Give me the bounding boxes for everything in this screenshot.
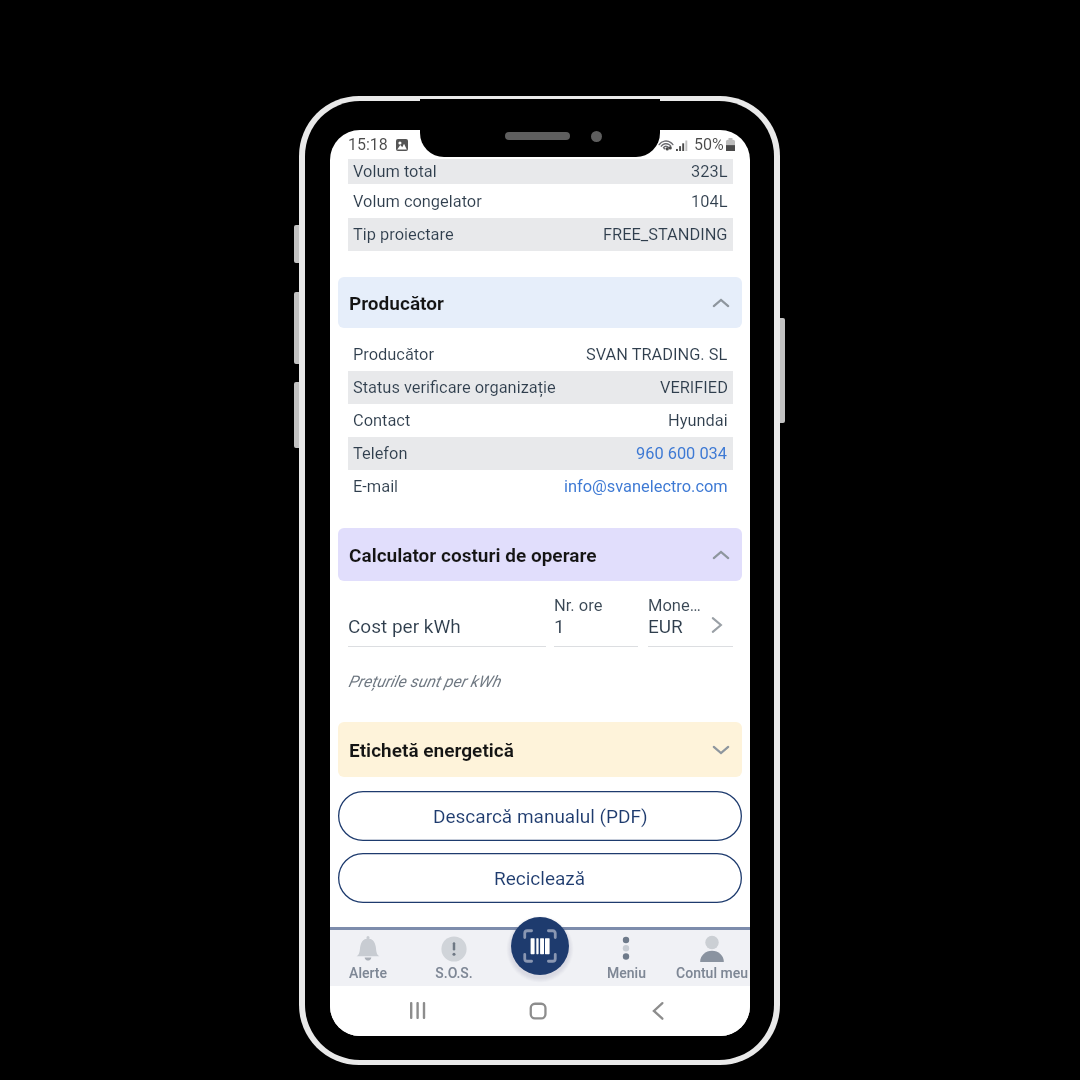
staticText: Contact bbox=[353, 411, 411, 430]
staticText: SVAN TRADING. SL bbox=[586, 345, 728, 364]
button[interactable]: Volum total bbox=[348, 159, 733, 184]
button[interactable]: Calculator costuri de operare bbox=[338, 528, 742, 581]
staticText: info@svanelectro.com bbox=[564, 477, 728, 496]
button[interactable]: Descarcă manualul (PDF) bbox=[338, 791, 742, 841]
staticText: 104L bbox=[691, 192, 728, 211]
staticText: E-mail bbox=[353, 477, 399, 496]
staticText: Nr. ore bbox=[554, 596, 603, 615]
button[interactable]: Producător bbox=[348, 338, 733, 371]
staticText: Mone… bbox=[648, 596, 701, 615]
other: Home bbox=[529, 1002, 547, 1020]
staticText: VERIFIED bbox=[660, 378, 728, 397]
staticText: Status verificare organizație bbox=[353, 378, 556, 397]
button[interactable]: Etichetă energetică bbox=[338, 722, 742, 777]
staticText: EUR bbox=[648, 615, 683, 637]
button[interactable]: Scan barcode bbox=[511, 917, 569, 975]
button[interactable]: Volum congelator bbox=[348, 184, 733, 218]
button[interactable]: Telefon bbox=[348, 437, 733, 470]
button[interactable]: S.O.S. bbox=[411, 930, 497, 986]
staticText: S.O.S. bbox=[435, 965, 473, 981]
other: Back bbox=[652, 1001, 664, 1021]
staticText: Tip proiectare bbox=[353, 225, 454, 244]
staticText: Producător bbox=[353, 345, 434, 364]
button[interactable]: Alerte bbox=[330, 930, 411, 986]
button[interactable]: Contact bbox=[348, 404, 733, 437]
staticText: Contul meu bbox=[676, 965, 748, 981]
staticText: Telefon bbox=[353, 444, 408, 463]
staticText: Hyundai bbox=[668, 411, 728, 430]
button[interactable]: Status verificare organizație bbox=[348, 371, 733, 404]
staticText: Etichetă energetică bbox=[349, 739, 514, 761]
staticText: Volum congelator bbox=[353, 192, 482, 211]
button[interactable]: E-mail bbox=[348, 470, 733, 503]
button[interactable]: Tip proiectare bbox=[348, 218, 733, 251]
staticText: Alerte bbox=[349, 965, 387, 981]
staticText: Volum total bbox=[353, 162, 437, 181]
button[interactable]: Meniu bbox=[583, 930, 669, 986]
staticText: Reciclează bbox=[494, 867, 586, 889]
staticText: Calculator costuri de operare bbox=[349, 544, 597, 566]
staticText: 1 bbox=[554, 615, 565, 637]
staticText: 960 600 034 bbox=[636, 444, 728, 463]
staticText: Meniu bbox=[607, 965, 646, 981]
staticText: Producător bbox=[349, 292, 444, 314]
other: Recents bbox=[410, 1002, 426, 1019]
staticText: Prețurile sunt per kWh bbox=[348, 672, 501, 691]
staticText: 15:18 bbox=[348, 135, 388, 154]
button[interactable]: Reciclează bbox=[338, 853, 742, 903]
staticText: Descarcă manualul (PDF) bbox=[433, 805, 648, 827]
staticText: Cost per kWh bbox=[348, 615, 461, 637]
button[interactable]: Contul meu bbox=[669, 930, 750, 986]
staticText: FREE_STANDING bbox=[603, 225, 728, 244]
button[interactable]: Producător bbox=[338, 277, 742, 328]
staticText: 323L bbox=[691, 162, 728, 181]
staticText: 50% bbox=[694, 135, 724, 154]
